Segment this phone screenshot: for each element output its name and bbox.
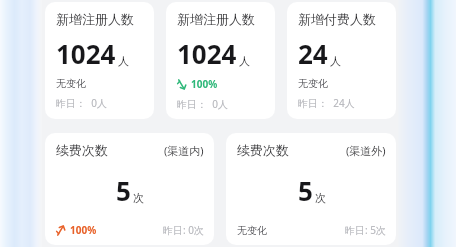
staticText: 100% bbox=[191, 77, 218, 91]
button[interactable]: 续费次数 bbox=[226, 133, 396, 245]
staticText: 次 bbox=[133, 191, 144, 205]
staticText: 新增注册人数 bbox=[56, 11, 134, 27]
staticText: 5 bbox=[298, 173, 313, 208]
staticText: 无变化 bbox=[56, 77, 86, 90]
staticText: 续费次数 bbox=[56, 142, 108, 158]
staticText: 昨日: 0次 bbox=[163, 223, 204, 237]
staticText: 无变化 bbox=[237, 224, 267, 237]
staticText: 1024 bbox=[56, 36, 116, 71]
staticText: 无变化 bbox=[298, 77, 328, 90]
staticText: 昨日： 24人 bbox=[298, 96, 355, 110]
staticText: 1024 bbox=[177, 36, 237, 71]
button[interactable]: 新增注册人数 bbox=[45, 2, 154, 119]
staticText: 100% bbox=[70, 223, 97, 237]
staticText: 人 bbox=[330, 54, 341, 68]
staticText: 次 bbox=[315, 191, 326, 205]
staticText: 人 bbox=[239, 54, 250, 68]
staticText: 昨日： 0人 bbox=[177, 97, 228, 111]
staticText: (渠道内) bbox=[164, 143, 204, 158]
staticText: 新增注册人数 bbox=[177, 11, 255, 27]
staticText: 昨日： 0人 bbox=[56, 96, 107, 110]
button[interactable]: 续费次数 bbox=[45, 133, 214, 245]
button[interactable]: 新增付费人数 bbox=[287, 2, 396, 119]
staticText: 5 bbox=[116, 173, 131, 208]
button[interactable]: 新增注册人数 bbox=[166, 2, 275, 119]
staticText: 新增付费人数 bbox=[298, 11, 376, 27]
staticText: (渠道外) bbox=[346, 143, 386, 158]
other: Increase bbox=[56, 225, 67, 236]
staticText: 昨日: 5次 bbox=[345, 223, 386, 237]
staticText: 人 bbox=[118, 54, 129, 68]
other: Decrease bbox=[177, 79, 188, 90]
staticText: 续费次数 bbox=[237, 142, 289, 158]
staticText: 24 bbox=[298, 36, 328, 71]
